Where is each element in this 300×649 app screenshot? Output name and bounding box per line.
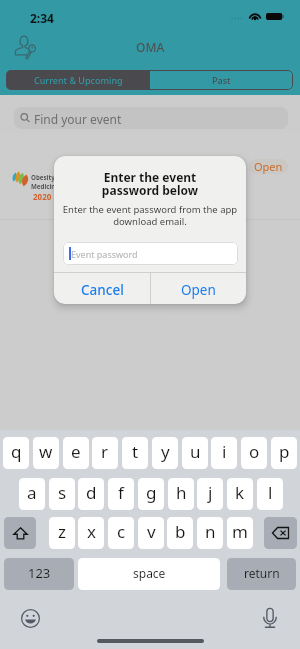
button[interactable]: l [257,478,283,510]
button[interactable]: t [122,437,148,469]
staticText: s [58,481,67,504]
staticText: Enter the event password from the app do… [56,203,244,227]
button[interactable]: o [241,437,267,469]
staticText: r [101,440,109,463]
button[interactable]: z [49,517,75,549]
staticText: Cancel [81,281,124,299]
staticText: 2:34 [30,10,54,26]
button[interactable]: Open [151,273,246,304]
button[interactable]: i [211,437,237,469]
staticText: space [133,565,166,581]
button[interactable]: j [197,478,223,510]
button[interactable]: s [49,478,75,510]
button[interactable]: g [138,478,164,510]
staticText: Find your event [34,111,122,127]
button[interactable]: x [78,517,104,549]
button[interactable]: m [227,517,253,549]
staticText: c [117,520,126,543]
button[interactable]: k [227,478,253,510]
button[interactable]: Cancel [54,273,150,304]
button[interactable]: Event password [63,242,238,265]
button[interactable]: d [78,478,104,510]
staticText: l [268,481,273,504]
button[interactable]: Current & Upcoming [6,70,150,90]
staticText: Obesity [31,173,55,181]
button[interactable]: 123 [4,558,74,590]
button[interactable]: Open [249,159,288,174]
staticText: q [11,440,22,463]
staticText: Enter the event password below [62,169,238,198]
staticText: u [190,440,201,463]
button[interactable]: space [78,558,220,590]
staticText: i [222,440,227,463]
button[interactable]: Backspace [264,517,297,549]
staticText: z [58,520,66,543]
button[interactable]: f [108,478,134,510]
button[interactable]: r [92,437,118,469]
staticText: k [235,481,245,504]
staticText: 123 [28,564,51,582]
staticText: b [175,520,186,543]
button[interactable]: Shift [4,517,36,549]
staticText: d [86,481,97,504]
staticText: a [27,481,37,504]
button[interactable]: u [182,437,208,469]
button[interactable]: a [19,478,45,510]
staticText: y [161,440,170,463]
button[interactable]: return [227,558,296,590]
staticText: p [279,440,290,463]
staticText: h [176,481,187,504]
button[interactable]: Emoji keyboard [21,609,40,628]
staticText: Open [254,159,283,174]
staticText: Past [212,74,231,86]
button[interactable]: Obesity [0,133,300,220]
staticText: j [208,481,213,504]
staticText: Medicine [31,182,60,190]
button[interactable]: b [167,517,193,549]
staticText: n [205,520,216,543]
staticText: g [146,481,157,504]
button[interactable]: v [138,517,164,549]
button[interactable]: w [33,437,59,469]
staticText: f [118,481,124,504]
staticText: Event password [71,248,138,260]
staticText: return [244,565,280,581]
button[interactable]: e [63,437,89,469]
staticText: x [87,520,96,543]
button[interactable]: Account [15,35,37,59]
staticText: Open [181,281,216,299]
staticText: OMA [136,39,165,55]
staticText: w [39,440,53,463]
staticText: Current & Upcoming [34,74,123,86]
staticText: m [232,520,248,543]
button[interactable]: q [3,437,29,469]
staticText: e [71,440,81,463]
staticText: 2020 [33,191,52,202]
button[interactable]: y [152,437,178,469]
button[interactable]: Past [150,70,293,90]
button[interactable]: n [197,517,223,549]
button[interactable]: h [168,478,194,510]
staticText: o [249,440,260,463]
button[interactable]: Find your event [14,107,288,129]
button[interactable]: Dictation [263,608,277,628]
button[interactable]: p [271,437,297,469]
staticText: v [147,520,156,543]
button[interactable]: c [108,517,134,549]
staticText: t [132,440,139,463]
